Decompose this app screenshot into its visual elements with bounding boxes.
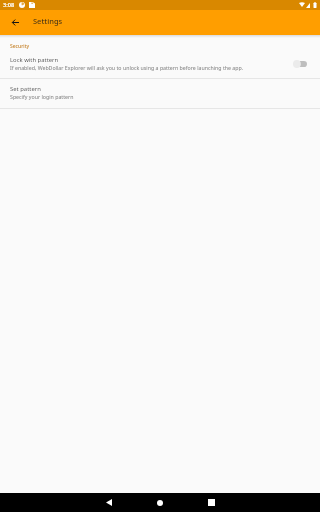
staticText: Lock with pattern <box>10 56 59 64</box>
button[interactable]: Back <box>96 493 122 512</box>
staticText: Set pattern <box>10 85 41 93</box>
button[interactable]: Recent apps <box>198 493 224 512</box>
button[interactable]: Lock with pattern <box>0 47 320 73</box>
button[interactable]: Lock with pattern <box>288 55 312 73</box>
staticText: Specify your login pattern <box>10 93 74 100</box>
staticText: Security <box>10 43 30 50</box>
button[interactable]: Home <box>147 493 173 512</box>
button[interactable]: Set pattern <box>0 79 320 108</box>
staticText: If enabled, WebDollar Explorer will ask … <box>10 64 244 71</box>
staticText: 3:08 <box>3 1 15 9</box>
staticText: Settings <box>33 16 63 26</box>
button[interactable]: Back <box>3 10 27 35</box>
